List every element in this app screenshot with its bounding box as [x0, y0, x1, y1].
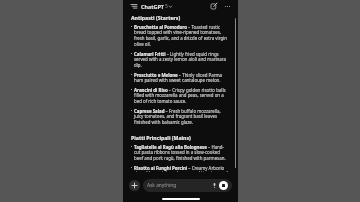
staticText: Tagliatelle al Ragù alla Bolognese – Han… [134, 144, 229, 162]
button[interactable]: Menu [129, 1, 139, 11]
staticText: Risotto ai Funghi Porcini – Creamy Arbor… [134, 165, 229, 172]
staticText: Caprese Salad – Fresh buffalo mozzarella… [134, 108, 229, 126]
staticText: Ask anything [147, 182, 177, 189]
staticText: Calamari Fritti – Lightly fried squid ri… [134, 51, 229, 69]
staticText: Prosciutto e Melone – Thinly sliced Parm… [134, 72, 229, 84]
button[interactable]: More options [222, 1, 232, 11]
staticText: ChatGPT [141, 3, 164, 10]
button[interactable]: New chat [209, 1, 219, 11]
staticText: Antipasti (Starters) [131, 14, 181, 21]
button[interactable]: Ask anything [143, 179, 232, 192]
button[interactable]: Attach [129, 180, 140, 191]
button[interactable]: Stop [219, 181, 228, 190]
staticText: 5 [165, 3, 168, 10]
staticText: Piatti Principali (Mains) [131, 134, 191, 141]
button[interactable]: ChatGPT [141, 3, 172, 10]
staticText: Arancini di Riso – Crispy golden risotto… [134, 87, 229, 105]
staticText: Bruschetta al Pomodoro – Toasted rustic … [134, 24, 229, 48]
button[interactable]: Voice input [211, 182, 218, 189]
